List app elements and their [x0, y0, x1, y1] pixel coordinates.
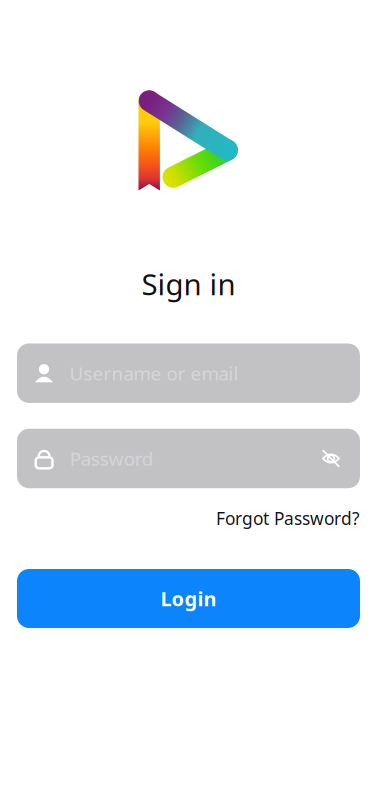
- staticText: Password: [70, 446, 153, 471]
- staticText: Login: [160, 585, 216, 612]
- staticText: Username or email: [69, 361, 238, 386]
- button[interactable]: Forgot Password?: [216, 503, 360, 534]
- staticText: Forgot Password?: [216, 507, 360, 530]
- button[interactable]: Login: [17, 569, 360, 628]
- staticText: Sign in: [141, 264, 235, 303]
